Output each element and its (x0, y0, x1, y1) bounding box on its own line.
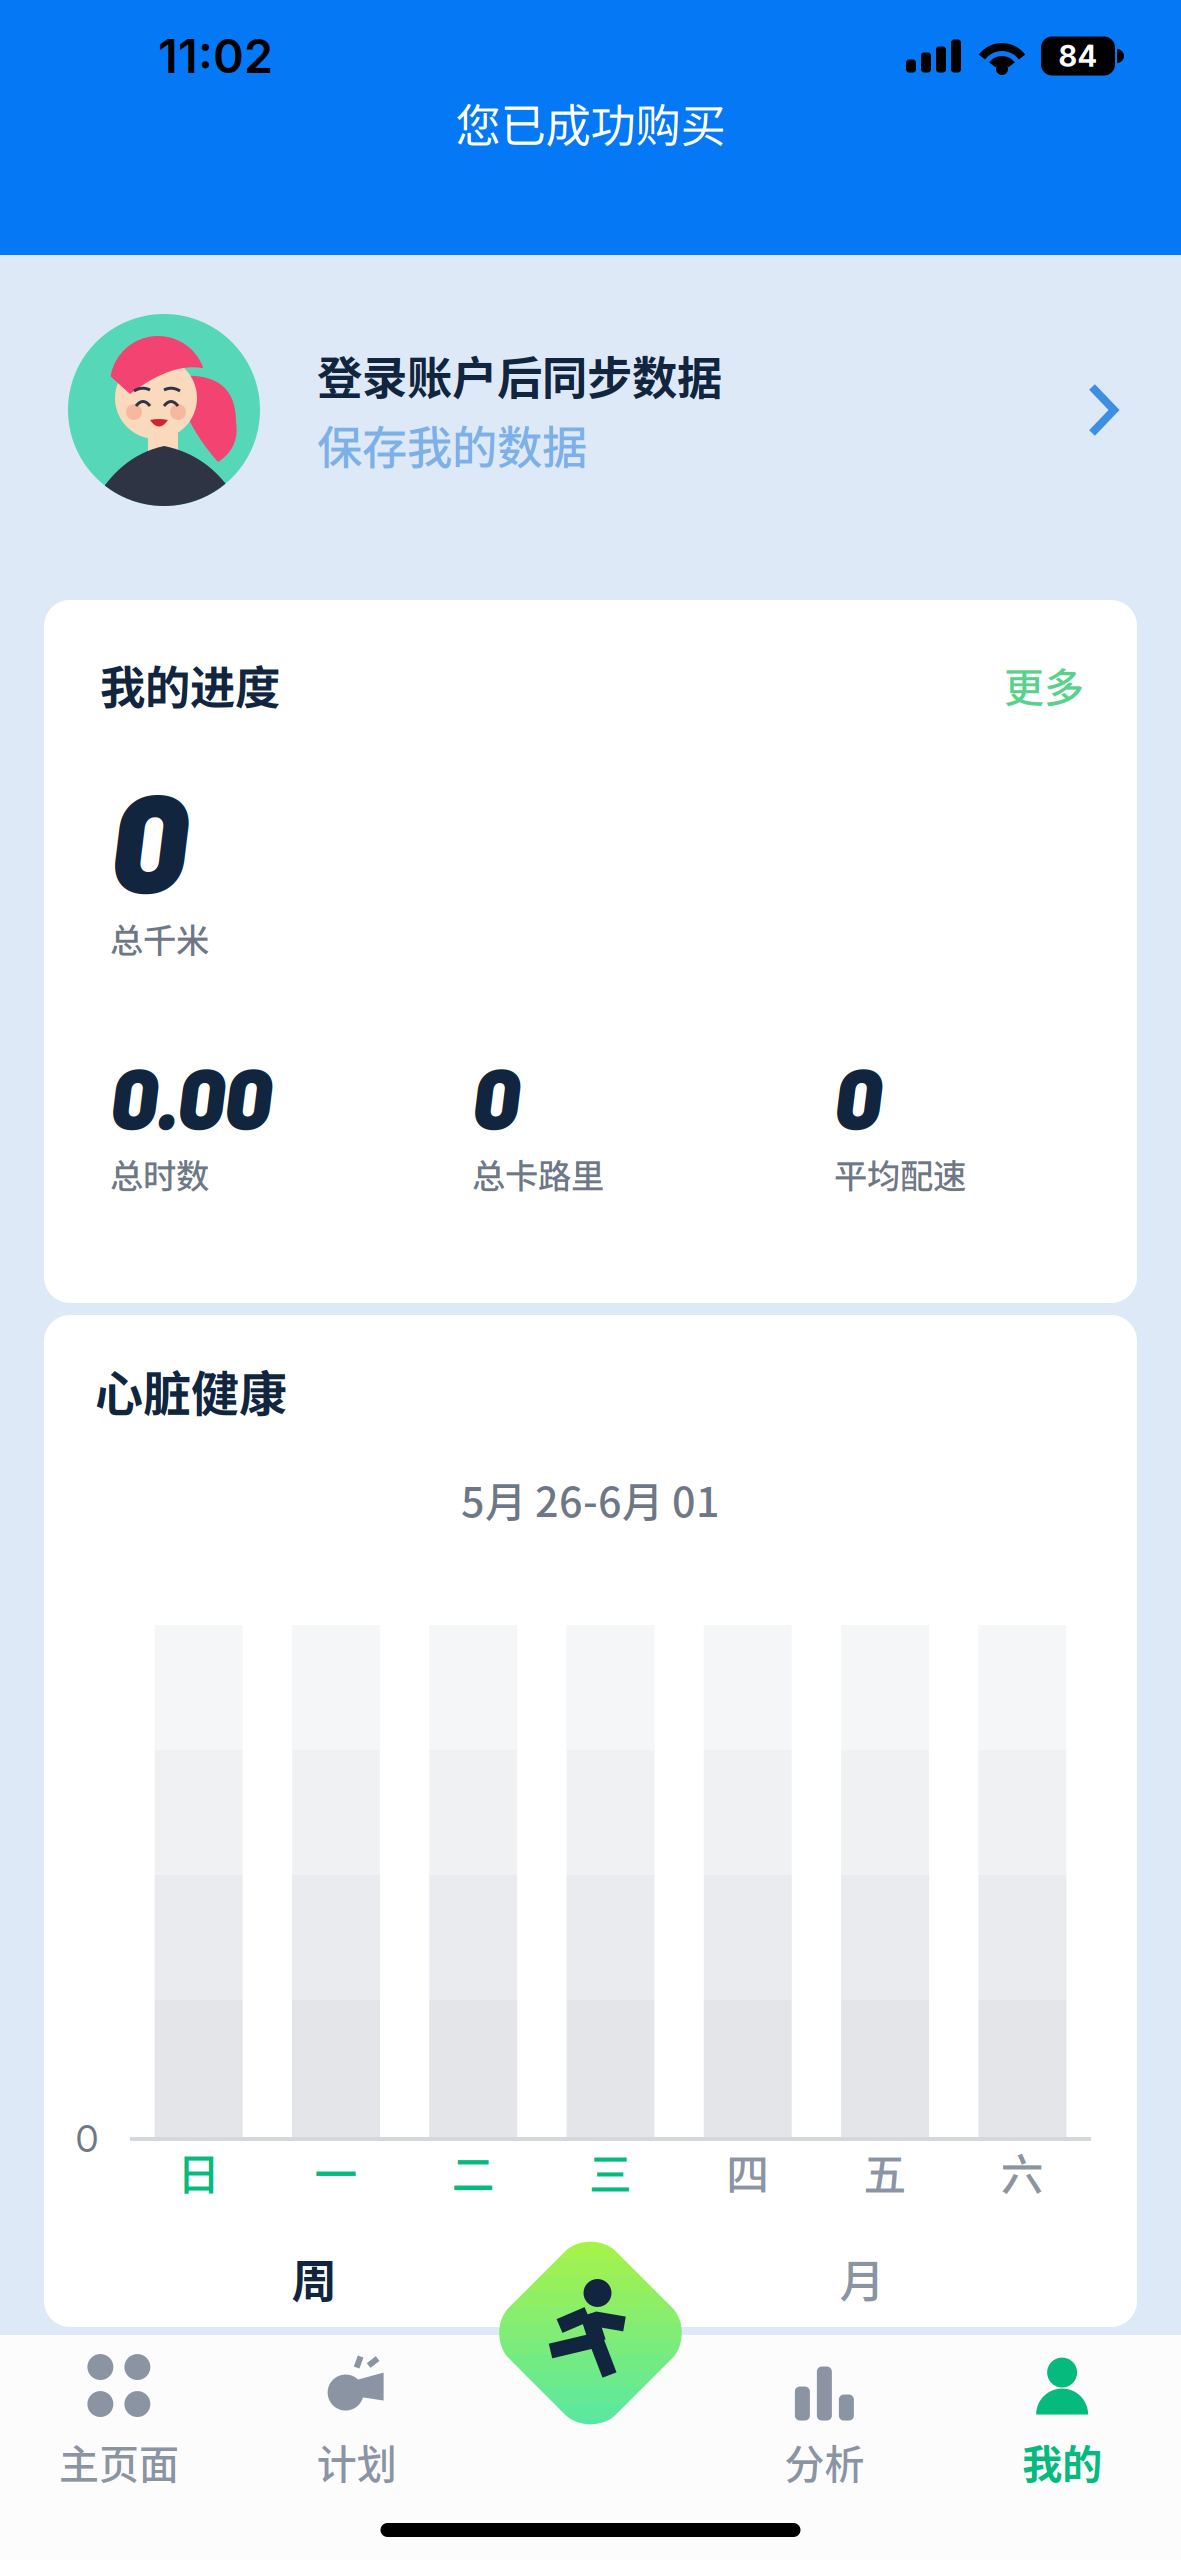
staticText: 三 (589, 2141, 632, 2203)
button[interactable]: 周 (204, 2203, 424, 2311)
staticText: 周 (291, 2245, 336, 2311)
staticText: 0 (110, 754, 187, 920)
staticText: 0 (75, 2116, 98, 2161)
staticText: 您已成功购买 (455, 90, 725, 156)
staticText: 一 (314, 2141, 357, 2203)
staticText: 分析 (784, 2432, 864, 2490)
staticText: 主页面 (59, 2432, 179, 2490)
staticText: 总千米 (110, 914, 209, 962)
staticText: 11:02 (158, 28, 273, 84)
staticText: 84 (1058, 38, 1097, 74)
staticText: 日 (177, 2141, 220, 2203)
staticText: 我的 (1022, 2432, 1102, 2490)
staticText: 六 (1001, 2141, 1044, 2203)
button[interactable]: 分析 (705, 2322, 943, 2512)
staticText: 计划 (317, 2432, 397, 2490)
staticText: 0 (472, 1044, 519, 1147)
button[interactable]: 开始运动 (474, 2217, 706, 2449)
staticText: 5月 26-6月 01 (461, 1469, 720, 1529)
staticText: 总时数 (110, 1150, 209, 1198)
staticText: 总卡路里 (472, 1150, 604, 1198)
button[interactable]: 月 (752, 2203, 972, 2311)
staticText: 月 (839, 2245, 884, 2311)
button[interactable]: 计划 (238, 2322, 476, 2512)
button[interactable]: 登录账户后同步数据 (0, 255, 1181, 600)
staticText: 四 (726, 2141, 769, 2203)
staticText: 保存我的数据 (317, 412, 587, 478)
button[interactable]: 更多 (1004, 656, 1084, 714)
staticText: 平均配速 (834, 1150, 966, 1198)
button[interactable]: 我的 (943, 2322, 1181, 2512)
staticText: 登录账户后同步数据 (317, 342, 722, 408)
button[interactable]: 主页面 (0, 2322, 238, 2512)
staticText: 0 (834, 1044, 881, 1147)
staticText: 0.00 (110, 1044, 271, 1147)
staticText: 我的进度 (100, 652, 280, 718)
staticText: 心脏健康 (95, 1355, 287, 1425)
staticText: 五 (864, 2141, 907, 2203)
staticText: 二 (452, 2141, 495, 2203)
staticText: 更多 (1004, 656, 1084, 714)
